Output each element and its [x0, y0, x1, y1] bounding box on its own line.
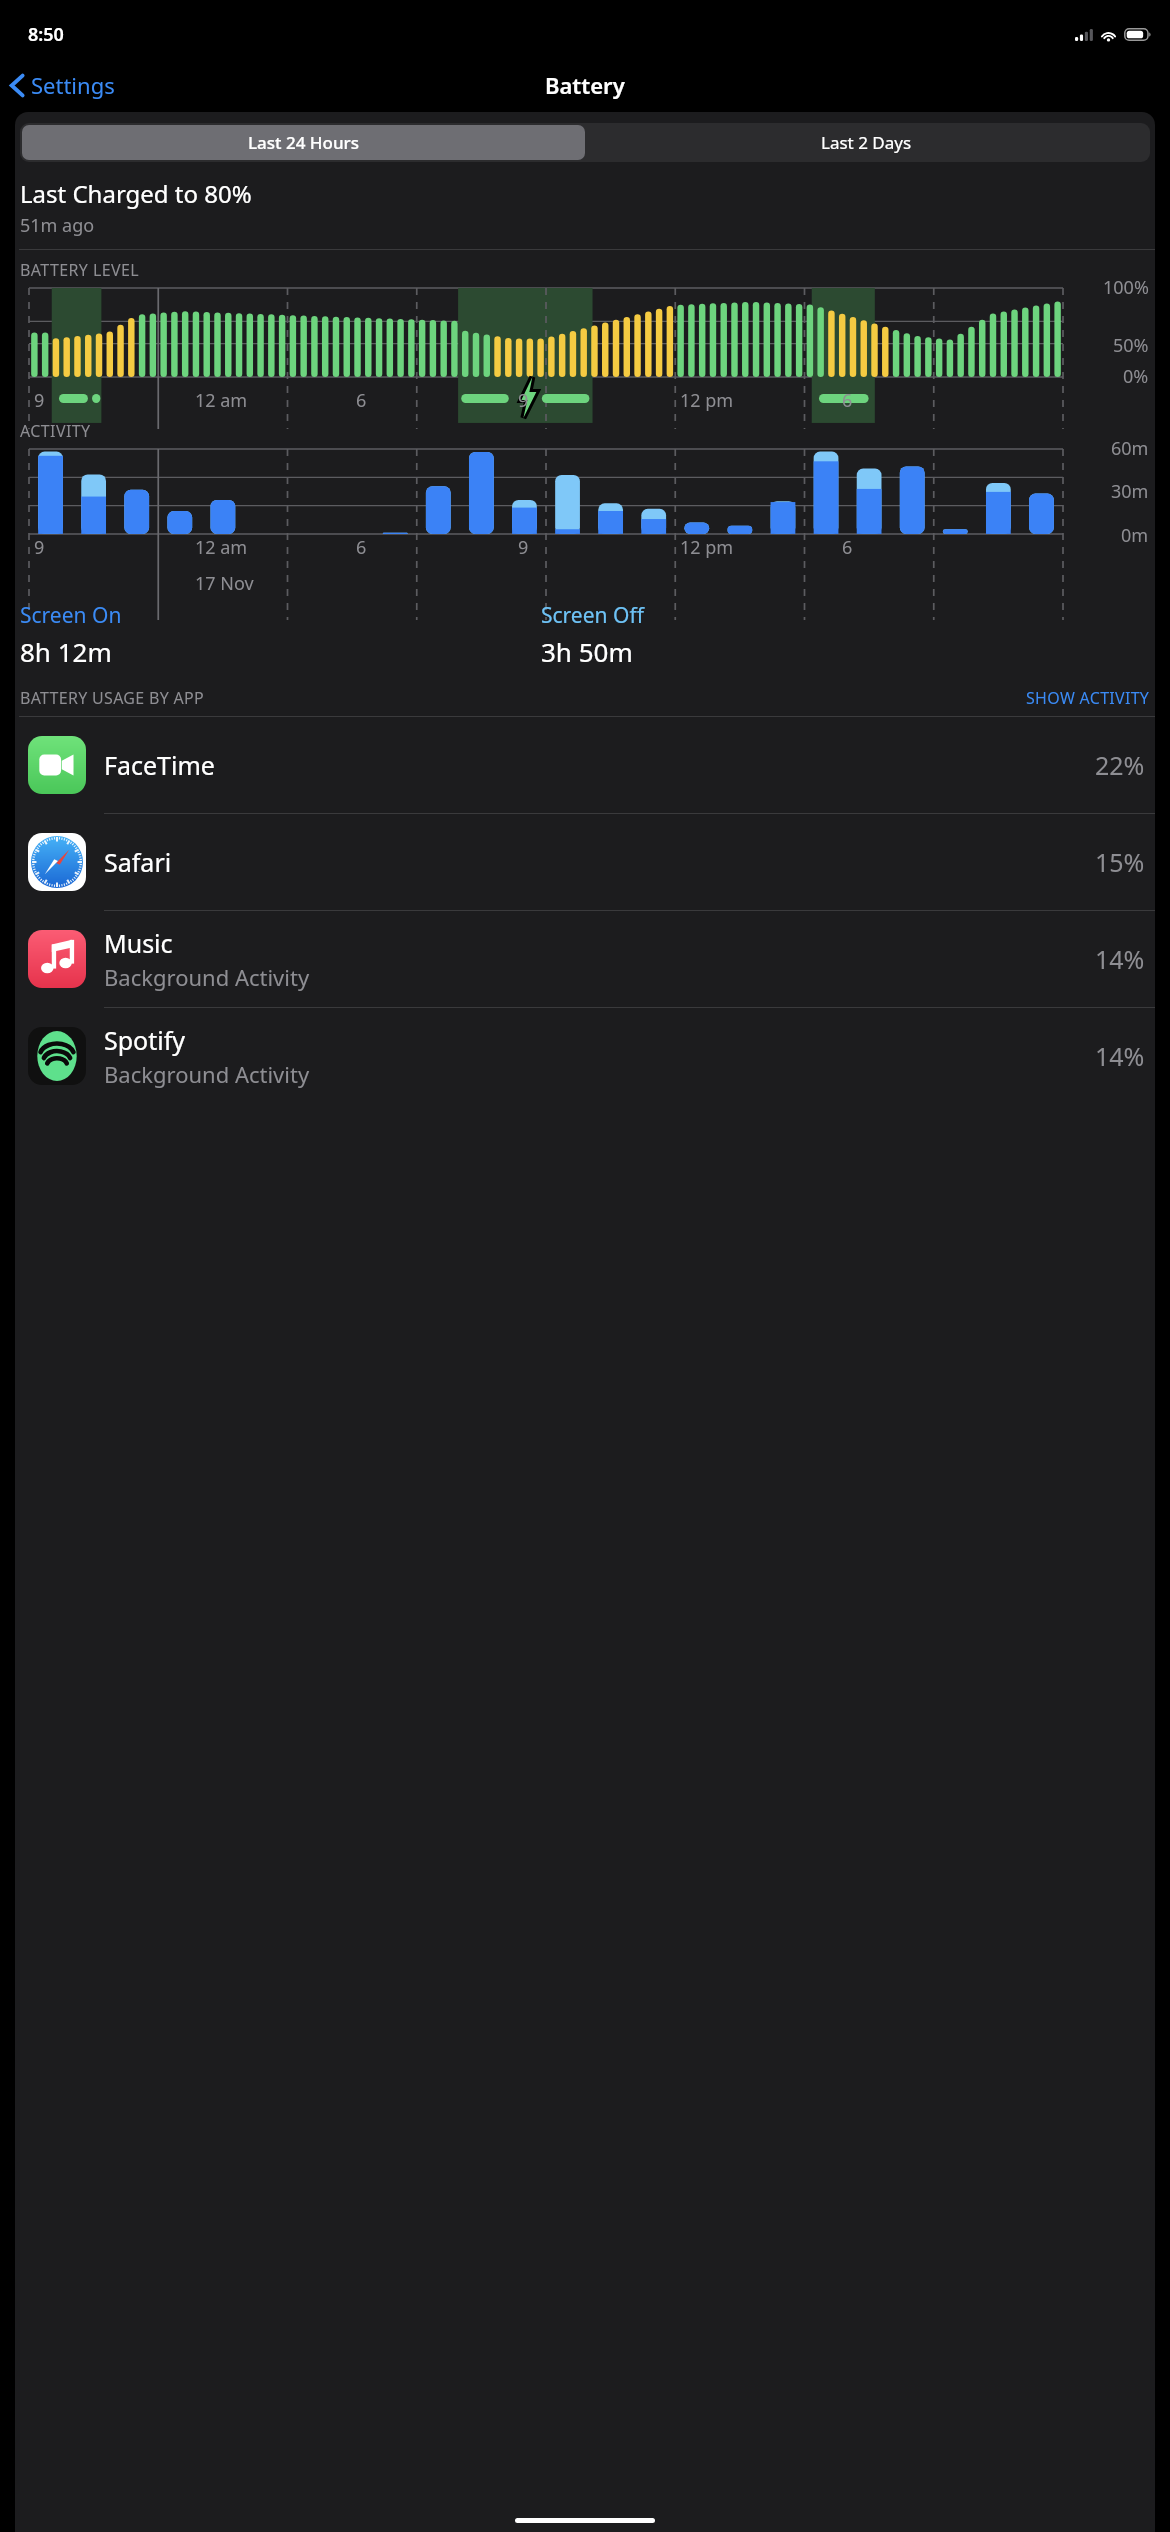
staticText: 3h 50m — [541, 634, 633, 669]
staticText: BATTERY USAGE BY APP — [20, 687, 204, 709]
staticText: 8:50 — [28, 22, 64, 47]
staticText: ACTIVITY — [20, 420, 91, 442]
staticText: Background Activity — [104, 1059, 310, 1089]
staticText: Screen Off — [541, 601, 644, 630]
staticText: 6 — [842, 535, 853, 560]
staticText: Background Activity — [104, 962, 310, 992]
staticText: 60m — [1111, 436, 1149, 461]
staticText: Music — [104, 926, 173, 960]
staticText: Screen On — [20, 601, 122, 630]
staticText: 0% — [1123, 364, 1149, 389]
other: Spotify — [28, 1027, 86, 1085]
staticText: Safari — [104, 845, 172, 879]
staticText: Spotify — [104, 1023, 186, 1057]
other: Music — [28, 930, 86, 988]
staticText: 12 am — [195, 535, 248, 560]
staticText: 12 pm — [680, 535, 734, 560]
other: Safari — [28, 833, 86, 891]
button[interactable]: Safari — [15, 814, 1155, 910]
staticText: 6 — [842, 388, 853, 413]
staticText: 8h 12m — [20, 634, 112, 669]
staticText: 15% — [1095, 845, 1145, 879]
staticText: 6 — [356, 535, 367, 560]
staticText: 100% — [1103, 275, 1149, 300]
staticText: 22% — [1095, 748, 1145, 782]
button[interactable]: Last 2 Days — [585, 125, 1148, 160]
staticText: 14% — [1095, 1039, 1145, 1073]
staticText: 9 — [34, 388, 45, 413]
staticText: BATTERY LEVEL — [20, 259, 140, 281]
staticText: Last Charged to 80% — [20, 177, 252, 210]
staticText: 50% — [1113, 333, 1149, 358]
staticText: 12 pm — [680, 388, 734, 413]
button[interactable]: Last 24 Hours — [22, 125, 585, 160]
staticText: Last 24 Hours — [248, 131, 360, 154]
staticText: Settings — [31, 70, 115, 100]
staticText: 12 am — [195, 388, 248, 413]
button[interactable]: SHOW ACTIVITY — [1026, 687, 1150, 709]
staticText: 0m — [1121, 523, 1149, 548]
staticText: 9 — [518, 388, 529, 413]
button[interactable]: Settings — [0, 64, 125, 106]
staticText: 51m ago — [20, 213, 95, 238]
staticText: Last 2 Days — [821, 131, 912, 154]
staticText: Battery — [545, 70, 625, 100]
staticText: 9 — [34, 535, 45, 560]
staticText: 6 — [356, 388, 367, 413]
button[interactable]: Spotify — [15, 1008, 1155, 1104]
button[interactable]: Music — [15, 911, 1155, 1007]
button[interactable]: FaceTime — [15, 717, 1155, 813]
staticText: 30m — [1111, 479, 1149, 504]
staticText: SHOW ACTIVITY — [1026, 687, 1150, 709]
other: FaceTime — [28, 736, 86, 794]
staticText: 9 — [518, 535, 529, 560]
staticText: 14% — [1095, 942, 1145, 976]
staticText: FaceTime — [104, 748, 215, 782]
staticText: 17 Nov — [195, 571, 254, 596]
